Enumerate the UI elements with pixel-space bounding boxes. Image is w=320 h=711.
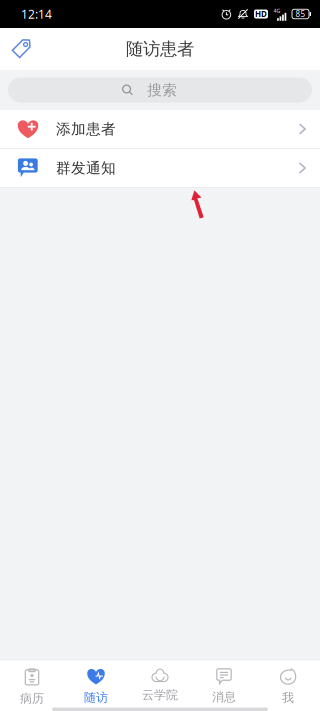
staticText: 随访 [84, 690, 108, 705]
button[interactable]: 我 [256, 660, 320, 707]
staticText: 随访患者 [126, 38, 194, 60]
staticText: 我 [282, 690, 294, 705]
button[interactable]: 云学院 [128, 660, 192, 707]
staticText: 85 [295, 9, 305, 19]
button[interactable]: 搜索 [0, 70, 320, 110]
staticText: 云学院 [142, 688, 178, 702]
staticText: 群发通知 [56, 159, 116, 177]
button[interactable]: 病历 [0, 660, 64, 707]
button[interactable]: 添加患者 [0, 110, 320, 149]
staticText: 搜索 [147, 81, 177, 99]
button[interactable]: 标签 [0, 28, 44, 70]
button[interactable]: 群发通知 [0, 149, 320, 188]
staticText: 12:14 [21, 6, 52, 22]
staticText: HD [255, 9, 267, 19]
staticText: 4G [273, 7, 280, 14]
staticText: 消息 [212, 690, 236, 704]
staticText: 添加患者 [56, 120, 116, 138]
staticText: 病历 [20, 691, 44, 706]
button[interactable]: 随访 [64, 660, 128, 707]
button[interactable]: 消息 [192, 660, 256, 707]
